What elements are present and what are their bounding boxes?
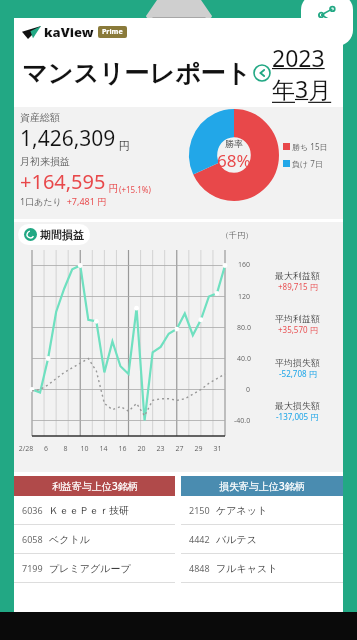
staticText: 負け 7日 xyxy=(290,158,323,169)
staticText: +35,570 円 xyxy=(278,324,318,335)
staticText: 4848 xyxy=(189,562,210,574)
staticText: 160 xyxy=(238,260,251,270)
staticText: 平均損失額 xyxy=(275,357,320,368)
button[interactable]: 6058 xyxy=(22,525,167,553)
staticText: 4442 xyxy=(189,533,210,545)
staticText: プレミアグループ xyxy=(49,562,131,575)
staticText: 10 xyxy=(75,444,94,454)
staticText: ベクトル xyxy=(49,533,90,546)
staticText: 23 xyxy=(151,444,170,454)
button[interactable]: 4442 xyxy=(189,525,335,553)
staticText: 最大利益額 xyxy=(275,270,320,281)
staticText: (+15.1%) xyxy=(119,184,151,195)
staticText: 損失寄与上位3銘柄 xyxy=(219,479,305,493)
staticText: +164,595 xyxy=(20,168,106,195)
staticText: kaView xyxy=(44,23,94,41)
staticText: 31 xyxy=(208,444,227,454)
staticText: マンスリーレポート xyxy=(22,58,252,89)
staticText: 16 xyxy=(113,444,132,454)
button[interactable]: 前の月 xyxy=(252,63,272,83)
staticText: 勝率 xyxy=(225,138,243,149)
staticText: 6 xyxy=(36,444,56,454)
staticText: 2/28 xyxy=(16,444,36,454)
staticText: 0 xyxy=(246,385,251,395)
staticText: バルテス xyxy=(216,533,257,546)
staticText: 6036 xyxy=(22,504,43,516)
staticText: -52,708 円 xyxy=(279,368,317,379)
button[interactable]: 7199 xyxy=(22,554,167,582)
staticText: -40.0 xyxy=(234,416,251,426)
staticText: 利益寄与上位3銘柄 xyxy=(52,479,138,493)
staticText: 20 xyxy=(132,444,151,454)
staticText: （千円） xyxy=(221,230,253,240)
button[interactable]: 期間損益 xyxy=(24,227,84,242)
button[interactable]: シェア xyxy=(301,0,353,46)
staticText: 40.0 xyxy=(237,354,251,364)
staticText: 14 xyxy=(94,444,113,454)
staticText: 最大損失額 xyxy=(275,400,320,411)
staticText: 期間損益 xyxy=(37,227,84,242)
button[interactable]: 2023年3月 xyxy=(272,42,343,104)
staticText: ＫｅｅＰｅｒ技研 xyxy=(49,504,129,517)
staticText: 7199 xyxy=(22,562,43,574)
staticText: 平均利益額 xyxy=(275,313,320,324)
button[interactable]: 4848 xyxy=(189,554,335,582)
staticText: 6058 xyxy=(22,533,43,545)
staticText: 勝ち 15日 xyxy=(290,141,328,152)
button[interactable]: 利益寄与上位3銘柄 xyxy=(14,476,175,602)
staticText: +7,481 円 xyxy=(62,195,107,207)
staticText: 円 xyxy=(116,138,130,153)
staticText: 68% xyxy=(217,149,251,172)
staticText: 27 xyxy=(170,444,189,454)
button[interactable]: 2150 xyxy=(189,496,335,524)
staticText: 月初来損益 xyxy=(20,155,70,168)
staticText: 円 xyxy=(106,181,119,195)
staticText: Prime xyxy=(102,27,123,37)
staticText: 資産総額 xyxy=(20,111,60,124)
staticText: 2150 xyxy=(189,504,210,516)
staticText: -137,005 円 xyxy=(276,411,319,422)
staticText: ケアネット xyxy=(216,504,268,517)
staticText: +89,715 円 xyxy=(278,281,318,292)
staticText: 8 xyxy=(56,444,75,454)
staticText: 29 xyxy=(189,444,208,454)
staticText: 80.0 xyxy=(237,323,251,333)
staticText: フルキャスト xyxy=(216,562,278,575)
staticText: 120 xyxy=(238,292,251,302)
staticText: 1口あたり xyxy=(20,195,62,207)
staticText: 1,426,309 xyxy=(20,124,116,153)
button[interactable]: 損失寄与上位3銘柄 xyxy=(181,476,343,602)
button[interactable]: 6036 xyxy=(22,496,167,524)
